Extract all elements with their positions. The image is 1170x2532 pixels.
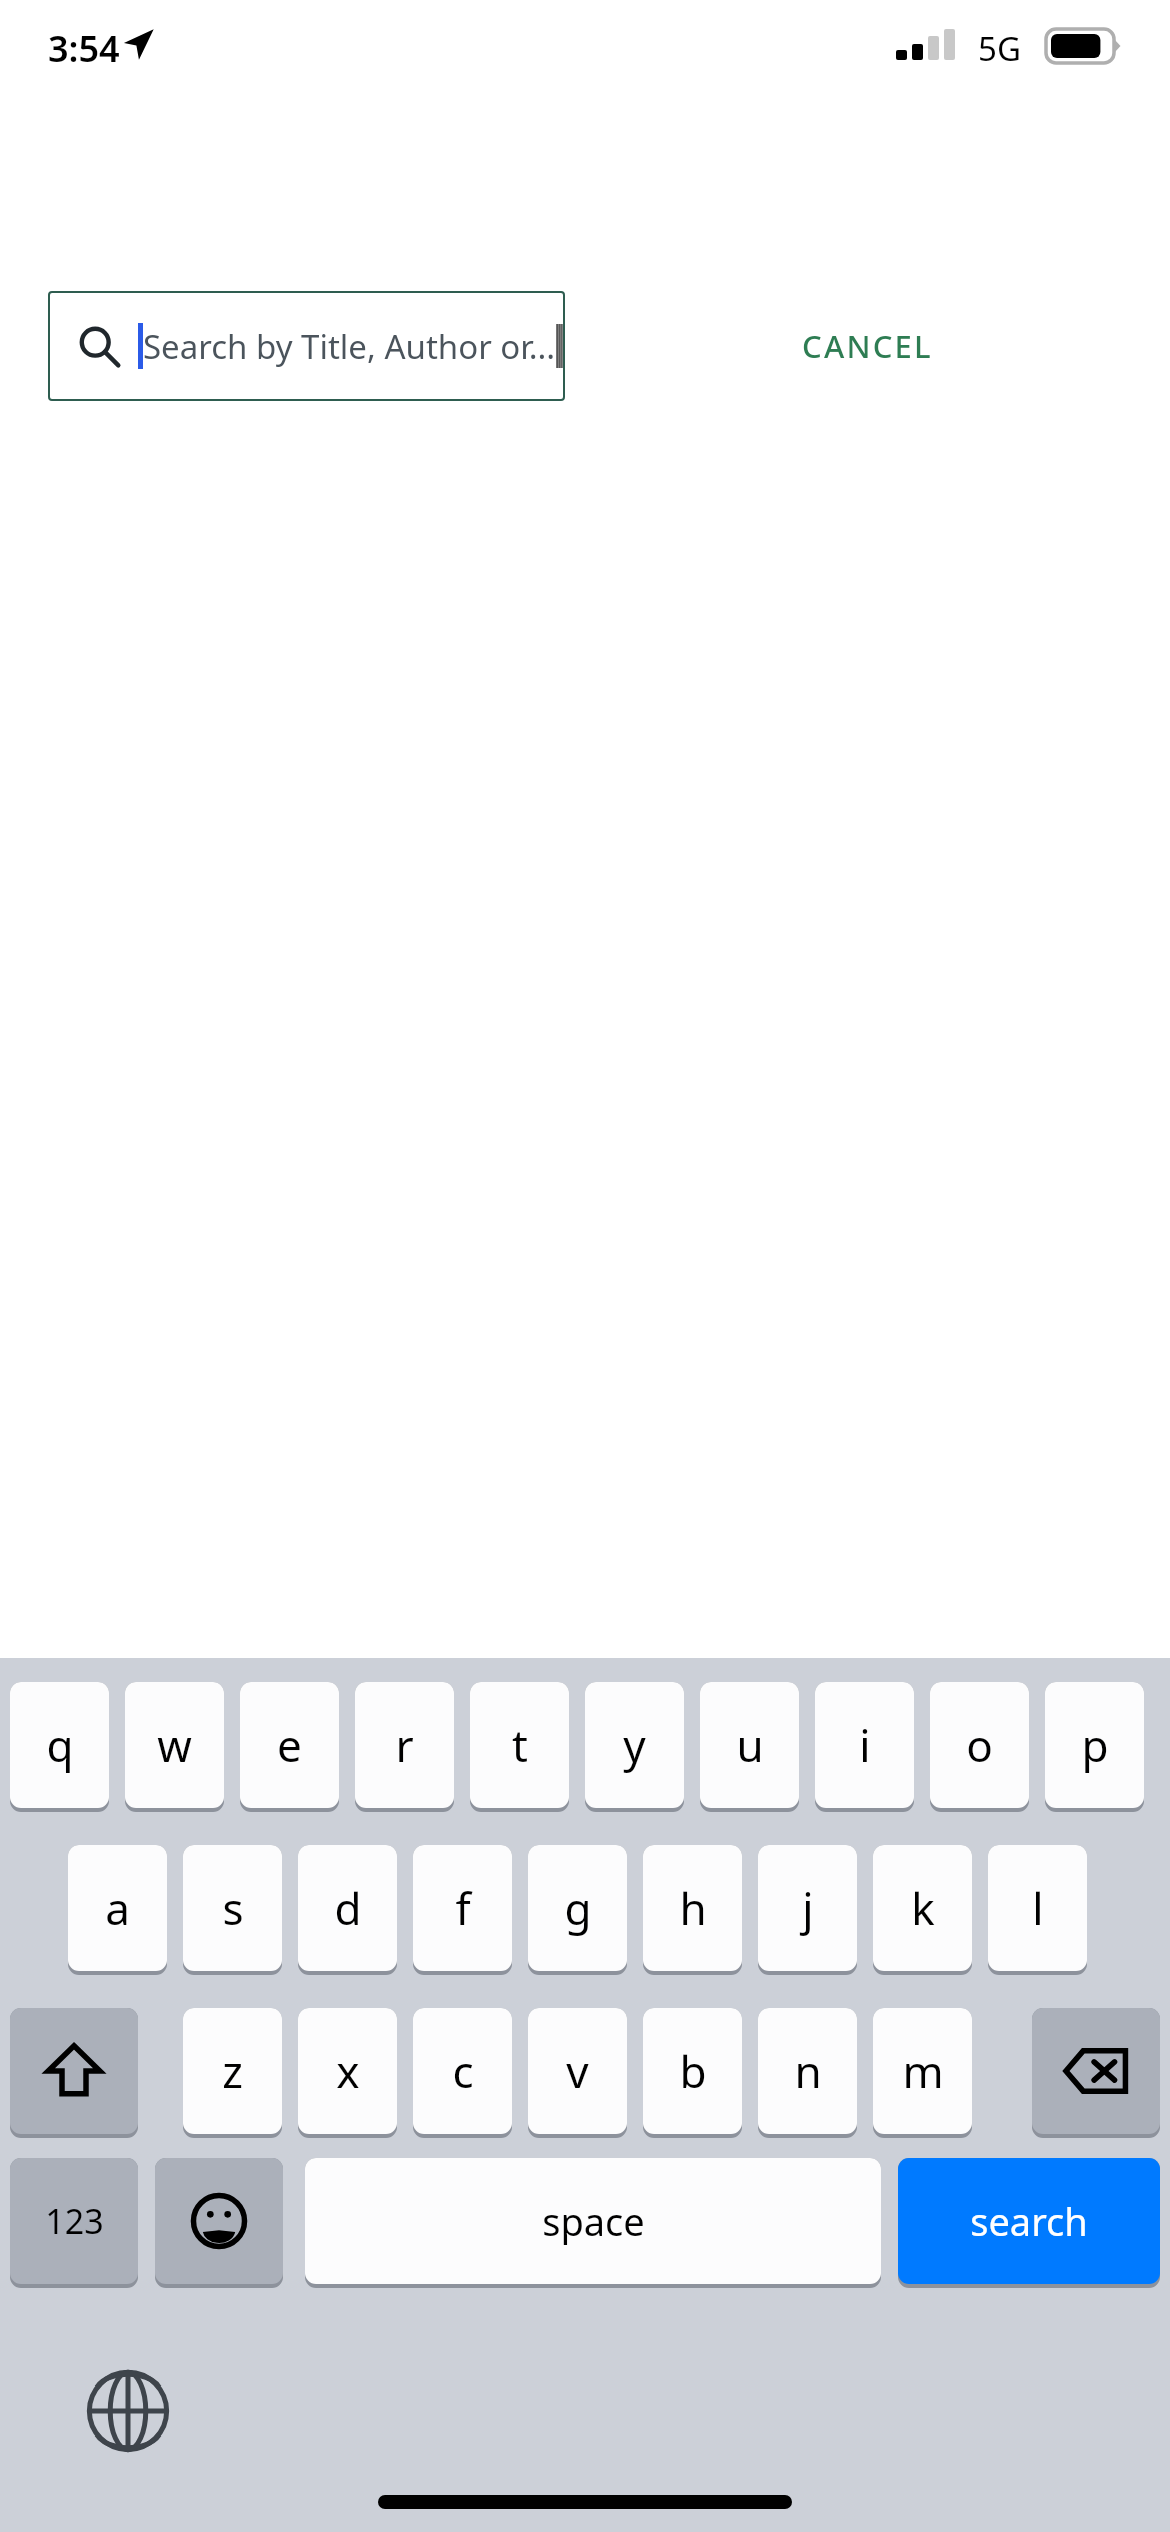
button[interactable]: b <box>643 2008 742 2134</box>
button[interactable]: m <box>873 2008 972 2134</box>
button[interactable]: h <box>643 1845 742 1971</box>
button[interactable]: space <box>305 2158 881 2284</box>
button[interactable]: v <box>528 2008 627 2134</box>
staticText: v <box>566 2041 589 2101</box>
button[interactable]: u <box>700 1682 799 1808</box>
staticText: i <box>859 1715 871 1775</box>
button[interactable]: Scan barcode <box>556 319 565 373</box>
staticText: search <box>970 2195 1088 2247</box>
button[interactable]: Search by Title, Author or... <box>48 291 565 401</box>
staticText: Search by Title, Author or... <box>143 324 556 369</box>
button[interactable]: q <box>10 1682 109 1808</box>
button[interactable]: s <box>183 1845 282 1971</box>
staticText: f <box>455 1878 471 1938</box>
button[interactable]: n <box>758 2008 857 2134</box>
staticText: o <box>966 1715 993 1775</box>
button[interactable]: z <box>183 2008 282 2134</box>
staticText: l <box>1032 1878 1044 1938</box>
staticText: 3:54 <box>48 24 120 73</box>
button[interactable]: w <box>125 1682 224 1808</box>
staticText: z <box>222 2041 243 2101</box>
staticText: h <box>679 1878 707 1938</box>
staticText: n <box>794 2041 822 2101</box>
staticText: a <box>105 1878 130 1938</box>
button[interactable]: p <box>1045 1682 1144 1808</box>
button[interactable]: Shift <box>10 2008 138 2134</box>
button[interactable]: t <box>470 1682 569 1808</box>
staticText: r <box>395 1715 414 1775</box>
button[interactable]: d <box>298 1845 397 1971</box>
staticText: y <box>623 1715 646 1775</box>
staticText: m <box>902 2041 944 2101</box>
staticText: x <box>336 2041 360 2101</box>
button[interactable]: CANCEL <box>565 291 1170 401</box>
staticText: q <box>46 1715 74 1775</box>
staticText: b <box>679 2041 707 2101</box>
staticText: w <box>157 1715 192 1775</box>
button[interactable]: j <box>758 1845 857 1971</box>
staticText: 123 <box>45 2198 104 2244</box>
staticText: j <box>802 1878 814 1938</box>
button[interactable]: l <box>988 1845 1087 1971</box>
button[interactable]: o <box>930 1682 1029 1808</box>
button[interactable]: g <box>528 1845 627 1971</box>
button[interactable]: Backspace <box>1032 2008 1160 2134</box>
button[interactable]: r <box>355 1682 454 1808</box>
button[interactable]: f <box>413 1845 512 1971</box>
staticText: u <box>736 1715 764 1775</box>
button[interactable]: Change keyboard <box>78 2361 178 2461</box>
button[interactable]: x <box>298 2008 397 2134</box>
staticText: CANCEL <box>802 325 933 367</box>
button[interactable]: y <box>585 1682 684 1808</box>
button[interactable]: a <box>68 1845 167 1971</box>
staticText: p <box>1081 1715 1109 1775</box>
button[interactable]: Emoji <box>155 2158 283 2284</box>
staticText: d <box>334 1878 362 1938</box>
button[interactable]: 123 <box>10 2158 138 2284</box>
button[interactable]: e <box>240 1682 339 1808</box>
staticText: t <box>512 1715 528 1775</box>
button[interactable]: search <box>898 2158 1160 2284</box>
staticText: e <box>277 1715 302 1775</box>
staticText: c <box>452 2041 474 2101</box>
button[interactable]: c <box>413 2008 512 2134</box>
staticText: space <box>542 2195 645 2247</box>
staticText: g <box>564 1878 592 1938</box>
staticText: k <box>911 1878 935 1938</box>
staticText: s <box>222 1878 244 1938</box>
staticText: 5G <box>978 26 1021 71</box>
button[interactable]: k <box>873 1845 972 1971</box>
button[interactable]: i <box>815 1682 914 1808</box>
